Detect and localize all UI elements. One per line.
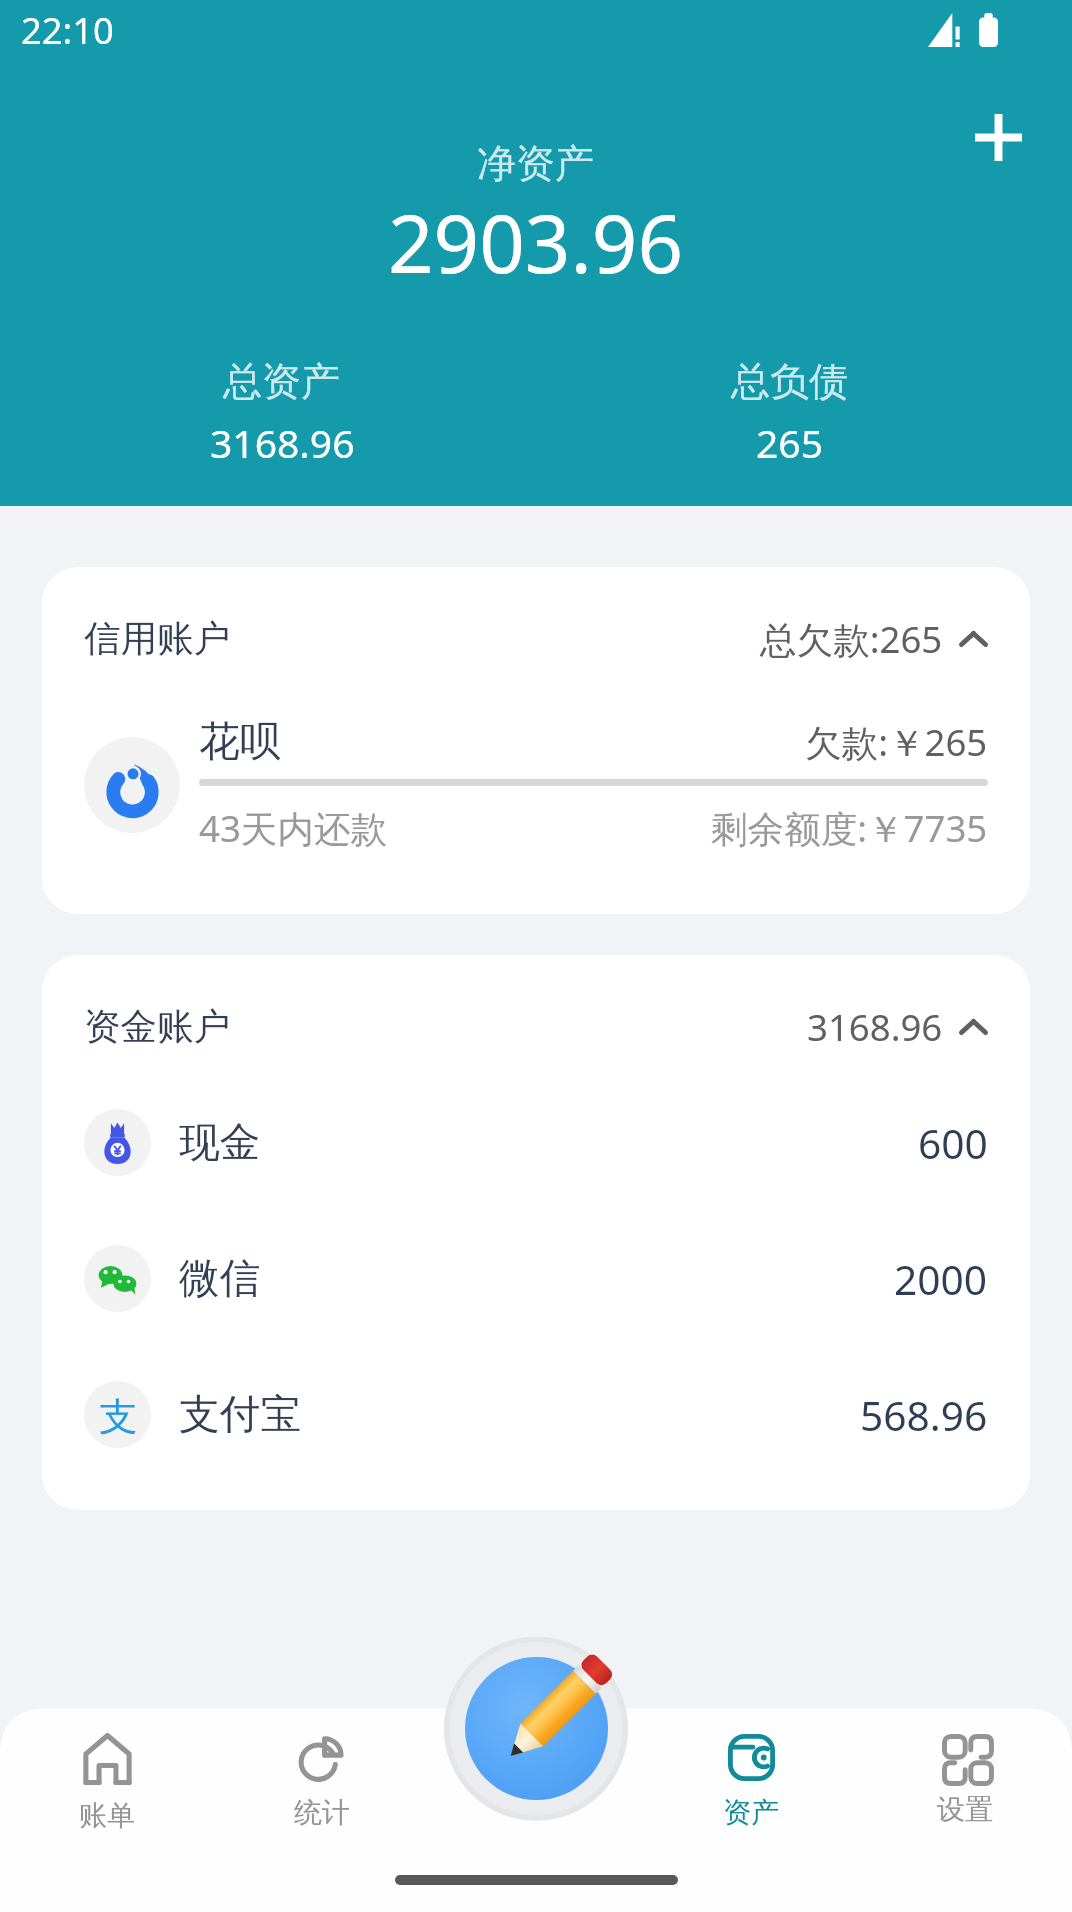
staticText: 3168.96 (210, 416, 355, 469)
button[interactable]: 信用账户 (42, 567, 1030, 914)
staticText: 花呗 (199, 716, 281, 767)
staticText: 43天内还款 (199, 803, 388, 853)
staticText: 资产 (723, 1795, 780, 1830)
staticText: 设置 (937, 1792, 994, 1827)
staticText: 账单 (79, 1798, 136, 1833)
button[interactable]: 微信 (42, 1210, 1030, 1346)
staticText: 净资产 (477, 139, 595, 188)
staticText: 现金 (179, 1117, 261, 1168)
staticText: 统计 (294, 1795, 351, 1830)
button[interactable]: Add account (938, 77, 1059, 198)
button[interactable]: 支 (42, 1346, 1030, 1482)
button[interactable]: 现金 (42, 1074, 1030, 1210)
staticText: 3168.96 (807, 1002, 943, 1052)
staticText: 总欠款:265 (760, 614, 943, 664)
button[interactable]: 资产 (644, 1708, 858, 1912)
staticText: 支 (99, 1393, 138, 1437)
button[interactable]: 统计 (215, 1708, 430, 1912)
staticText: 欠款:￥265 (805, 717, 988, 767)
staticText: 微信 (179, 1253, 261, 1304)
staticText: 2903.96 (388, 188, 684, 297)
staticText: 资金账户 (84, 1004, 231, 1050)
staticText: 265 (756, 416, 824, 469)
staticText: 22:10 (21, 5, 114, 54)
button[interactable]: 资金账户 (42, 1002, 1030, 1052)
staticText: 568.96 (860, 1387, 988, 1442)
button[interactable]: Add record (465, 1657, 608, 1800)
staticText: 总资产 (223, 357, 341, 406)
staticText: 600 (918, 1115, 988, 1170)
staticText: 支付宝 (179, 1389, 302, 1440)
staticText: 信用账户 (84, 616, 231, 662)
staticText: 剩余额度:￥7735 (711, 803, 988, 853)
button[interactable]: 账单 (0, 1708, 215, 1912)
staticText: 2000 (894, 1251, 988, 1306)
button[interactable]: 设置 (858, 1708, 1072, 1912)
staticText: 总负债 (731, 357, 849, 406)
